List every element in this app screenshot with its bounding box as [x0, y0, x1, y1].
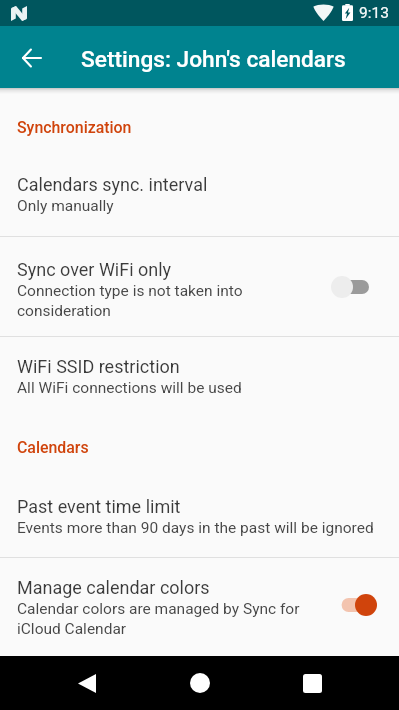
staticText: Sync over WiFi only	[17, 259, 172, 280]
button[interactable]: Calendars sync. interval	[0, 174, 399, 215]
staticText: Past event time limit	[17, 496, 181, 517]
staticText: Only manually	[17, 195, 114, 215]
staticText: 9:13	[359, 4, 389, 22]
staticText: Calendars sync. interval	[17, 174, 208, 195]
button[interactable]: Sync over WiFi only	[0, 259, 399, 320]
button[interactable]: Past event time limit	[0, 496, 399, 537]
button[interactable]: Manage calendar colors	[0, 577, 399, 638]
button[interactable]: Toggle	[333, 272, 381, 302]
staticText: Events more than 90 days in the past wil…	[17, 517, 374, 537]
button[interactable]: Toggle	[333, 590, 381, 620]
button[interactable]: Recents	[286, 657, 338, 709]
button[interactable]: Back	[9, 36, 53, 80]
staticText: Calendars	[17, 438, 89, 457]
button[interactable]: WiFi SSID restriction	[0, 356, 399, 397]
staticText: All WiFi connections will be used	[17, 377, 242, 397]
staticText: Calendar colors are managed by Sync for …	[17, 598, 319, 638]
staticText: WiFi SSID restriction	[17, 356, 180, 377]
staticText: Manage calendar colors	[17, 577, 210, 598]
staticText: Settings: John's calendars	[81, 46, 346, 73]
button[interactable]: Home	[174, 657, 226, 709]
staticText: Synchronization	[17, 118, 132, 137]
staticText: Connection type is not taken into consid…	[17, 280, 319, 320]
button[interactable]: Back	[61, 657, 113, 709]
